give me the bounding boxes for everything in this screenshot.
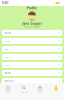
button[interactable]: Edit profile <box>2 30 62 36</box>
button[interactable]: Profile <box>48 83 64 100</box>
staticText: 9:41 <box>2 1 9 5</box>
staticText: Settings <box>4 48 9 50</box>
staticText: Profile <box>27 6 37 10</box>
staticText: Home <box>6 91 10 93</box>
button[interactable]: Help & Support <box>2 78 62 84</box>
button[interactable]: Payment <box>2 38 62 44</box>
button[interactable]: Orders <box>32 83 48 100</box>
staticText: Notification <box>4 72 11 74</box>
staticText: Privacy <box>4 56 10 58</box>
staticText: Help & Support <box>4 80 14 82</box>
staticText: jane.cooper@mail.com <box>24 26 39 27</box>
button[interactable]: Home <box>0 83 16 100</box>
staticText: Jane Cooper <box>22 22 41 25</box>
button[interactable]: Search <box>16 83 32 100</box>
staticText: Orders <box>37 91 43 93</box>
staticText: Edit profile <box>4 32 11 34</box>
button[interactable]: Privacy <box>2 54 62 60</box>
button[interactable]: Notification <box>2 70 62 76</box>
staticText: Payment <box>4 40 10 42</box>
button[interactable]: Security <box>2 62 62 68</box>
button[interactable]: Settings <box>2 46 62 52</box>
staticText: Security <box>4 64 10 66</box>
staticText: Profile <box>53 91 58 93</box>
